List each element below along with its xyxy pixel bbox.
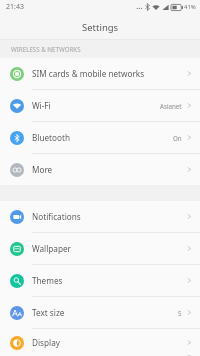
staticText: Asianet <box>160 102 182 110</box>
staticText: Bluetooth <box>32 132 70 143</box>
other: Notifications <box>10 210 24 224</box>
other: Bluetooth <box>10 131 24 145</box>
button[interactable]: Display <box>0 329 200 356</box>
staticText: Wallpaper <box>32 243 71 254</box>
button[interactable]: Notifications <box>0 201 200 232</box>
staticText: SIM cards & mobile networks <box>32 68 145 79</box>
other: Display <box>10 336 24 350</box>
staticText: 41% <box>184 3 196 11</box>
other: Wi-Fi <box>10 99 24 113</box>
staticText: Wi-Fi <box>32 100 51 111</box>
button[interactable]: SIM cards <box>0 58 200 89</box>
button[interactable]: Themes <box>0 265 200 296</box>
staticText: Notifications <box>32 211 81 222</box>
other: Text size <box>10 306 24 320</box>
other: More <box>10 163 24 177</box>
staticText: WIRELESS & NETWORKS <box>11 45 81 53</box>
button[interactable]: Bluetooth <box>0 122 200 153</box>
other: Themes <box>10 274 24 288</box>
staticText: Themes <box>32 275 63 286</box>
button[interactable]: Wi-Fi <box>0 90 200 121</box>
staticText: More <box>32 164 53 175</box>
other: SIM cards <box>10 67 24 81</box>
button[interactable]: Text size <box>0 297 200 328</box>
button[interactable]: More <box>0 154 200 185</box>
staticText: Settings <box>82 21 119 34</box>
staticText: 21:43 <box>6 2 24 12</box>
other: Wallpaper <box>10 242 24 256</box>
staticText: Display <box>32 337 60 348</box>
staticText: On <box>173 134 182 142</box>
staticText: S <box>178 309 182 317</box>
button[interactable]: Wallpaper <box>0 233 200 264</box>
staticText: Text size <box>32 307 65 318</box>
